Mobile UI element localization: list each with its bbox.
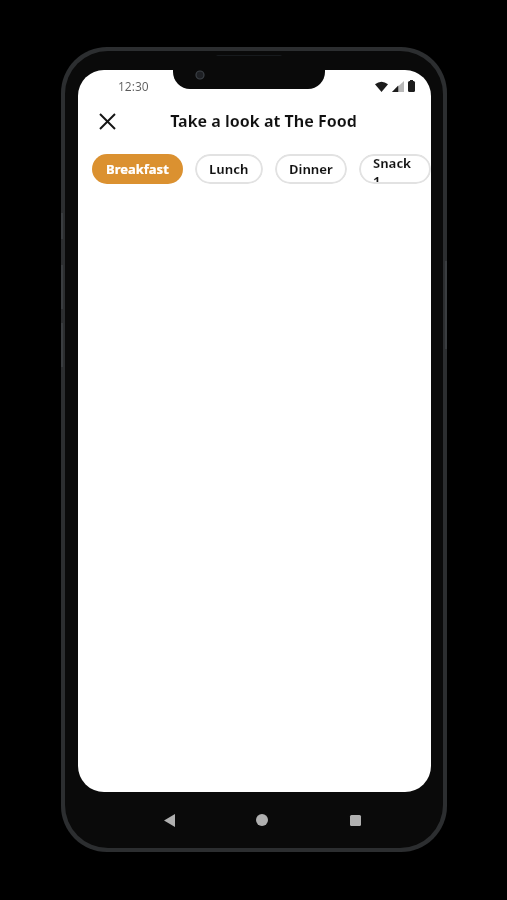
button[interactable]: Snack 1: [359, 154, 431, 184]
staticText: Snack 1: [373, 154, 417, 184]
staticText: Dinner: [289, 160, 333, 178]
staticText: Take a look at The Food: [170, 110, 357, 132]
button[interactable]: Close: [87, 101, 127, 141]
button[interactable]: Back: [149, 800, 189, 840]
staticText: Breakfast: [106, 160, 169, 178]
button[interactable]: Recent apps: [335, 800, 375, 840]
button[interactable]: Dinner: [275, 154, 347, 184]
button[interactable]: Home: [242, 800, 282, 840]
staticText: Lunch: [209, 160, 249, 178]
button[interactable]: Lunch: [195, 154, 263, 184]
button[interactable]: Breakfast: [92, 154, 183, 184]
staticText: 12:30: [118, 78, 149, 94]
